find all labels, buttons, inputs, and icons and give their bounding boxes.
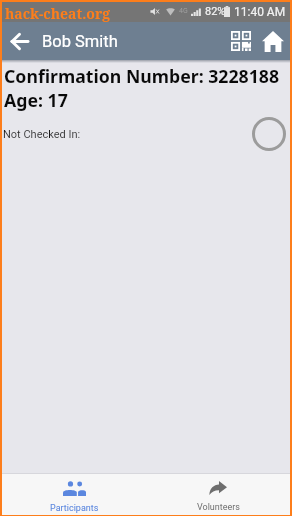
- button[interactable]: Volunteers: [146, 474, 290, 513]
- staticText: 82%: [205, 5, 226, 18]
- staticText: Confirmation Number: 3228188: [4, 64, 280, 88]
- button[interactable]: Scan QR code: [226, 26, 255, 55]
- staticText: Bob Smith: [42, 32, 118, 51]
- button[interactable]: Home: [257, 26, 288, 57]
- staticText: Not Checked In:: [3, 128, 81, 141]
- staticText: hack-cheat.org: [5, 4, 111, 23]
- staticText: Age: 17: [4, 88, 68, 112]
- staticText: 4G: [179, 7, 188, 15]
- staticText: Volunteers: [197, 502, 240, 513]
- staticText: Participants: [50, 503, 99, 514]
- button[interactable]: Check in: [250, 115, 288, 153]
- button[interactable]: Back: [5, 27, 33, 55]
- staticText: 11:40 AM: [234, 5, 286, 19]
- button[interactable]: Participants: [2, 474, 146, 514]
